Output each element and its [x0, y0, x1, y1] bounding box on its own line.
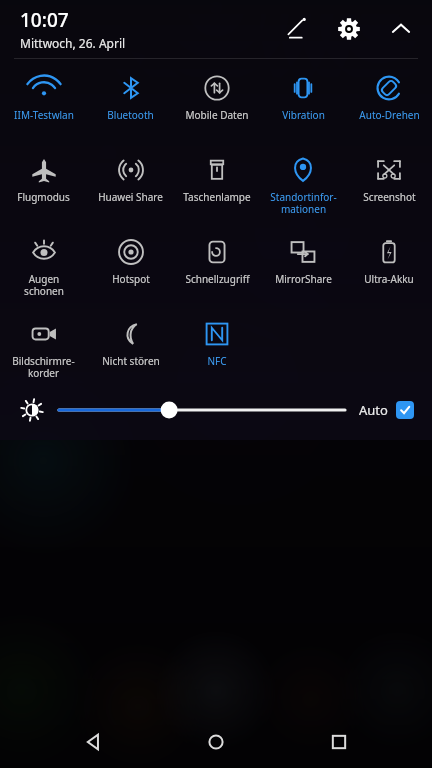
button[interactable]: Einstellungen [332, 12, 366, 46]
staticText: IIM-Testwlan [14, 108, 74, 122]
button[interactable]: Vibration [260, 65, 346, 147]
button[interactable]: NFC [174, 311, 260, 383]
staticText: Vibration [282, 108, 325, 122]
staticText: Huawei Share [98, 190, 163, 204]
staticText: NFC [207, 354, 227, 368]
button[interactable]: Auto [359, 401, 414, 419]
button[interactable]: Helligkeitsregler [59, 397, 345, 423]
staticText: Mobile Daten [185, 108, 249, 122]
button[interactable]: Helligkeit [18, 396, 46, 424]
staticText: Nicht stören [102, 354, 160, 368]
staticText: Bluetooth [107, 108, 154, 122]
staticText: Augen schonen [24, 272, 64, 298]
button[interactable]: Hotspot [87, 229, 174, 311]
button[interactable]: Bildschirmre- korder [0, 311, 87, 383]
staticText: Standortinfor- mationen [270, 190, 337, 216]
button[interactable]: Nicht stören [87, 311, 174, 383]
button[interactable]: Standortinfor- mationen [260, 147, 346, 229]
button[interactable]: Augen schonen [0, 229, 87, 311]
button[interactable]: IIM-Testwlan [0, 65, 87, 147]
button[interactable]: Huawei Share [87, 147, 174, 229]
staticText: 10:07 [20, 7, 69, 33]
button[interactable]: Mobile Daten [174, 65, 260, 147]
button[interactable]: Einklappen [384, 12, 418, 46]
button[interactable]: Schnellzugriff [174, 229, 260, 311]
button[interactable]: Übersicht [310, 716, 368, 768]
staticText: Ultra-Akku [364, 272, 414, 286]
button[interactable]: Taschenlampe [174, 147, 260, 229]
button[interactable]: Auto-Drehen [346, 65, 432, 147]
button[interactable]: Startbildschirm [187, 716, 245, 768]
staticText: Auto-Drehen [359, 108, 420, 122]
staticText: Mittwoch, 26. April [20, 35, 126, 51]
staticText: Flugmodus [17, 190, 70, 204]
staticText: Screenshot [363, 190, 416, 204]
staticText: Schnellzugriff [185, 272, 250, 286]
staticText: MirrorShare [275, 272, 332, 286]
staticText: Hotspot [112, 272, 150, 286]
staticText: Auto [359, 401, 388, 419]
button[interactable]: MirrorShare [260, 229, 346, 311]
button[interactable]: Ultra-Akku [346, 229, 432, 311]
button[interactable]: Flugmodus [0, 147, 87, 229]
button[interactable]: Bluetooth [87, 65, 174, 147]
button[interactable]: Bearbeiten [280, 12, 314, 46]
staticText: Bildschirmre- korder [12, 354, 75, 380]
button[interactable]: Screenshot [346, 147, 432, 229]
button[interactable]: Zurück [65, 716, 123, 768]
staticText: Taschenlampe [183, 190, 251, 204]
